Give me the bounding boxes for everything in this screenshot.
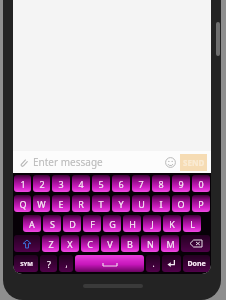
button[interactable]: I (152, 195, 170, 212)
staticText: J (151, 218, 154, 230)
button[interactable]: 2 (33, 175, 50, 192)
button[interactable]: 6 (112, 175, 130, 192)
staticText: O (177, 198, 185, 210)
button[interactable]: B (121, 235, 139, 252)
button[interactable]: 8 (152, 175, 170, 192)
button[interactable]: R (72, 195, 90, 212)
button[interactable]: N (141, 235, 159, 252)
staticText: K (169, 218, 175, 230)
staticText: U (138, 198, 145, 210)
button[interactable]: U (132, 195, 150, 212)
staticText: F (90, 218, 95, 230)
button[interactable]: F (83, 215, 101, 232)
staticText: 1 (20, 178, 26, 190)
staticText: M (166, 238, 175, 250)
staticText: SYM (20, 260, 33, 268)
staticText: 3 (58, 178, 64, 190)
button[interactable]: 3 (52, 175, 70, 192)
staticText: Q (19, 198, 27, 210)
staticText: 8 (158, 178, 164, 190)
staticText: R (78, 198, 84, 210)
button[interactable]: Done (183, 255, 210, 272)
staticText: X (67, 238, 73, 250)
staticText: G (109, 218, 116, 230)
staticText: L (190, 218, 195, 230)
staticText: H (129, 218, 136, 230)
button[interactable]: 7 (132, 175, 150, 192)
staticText: ? (47, 258, 51, 270)
staticText: P (198, 198, 204, 210)
button[interactable]: E (52, 195, 70, 212)
button[interactable]: C (81, 235, 99, 252)
button[interactable]: Power (216, 22, 220, 56)
button[interactable]: Enter (162, 255, 181, 272)
staticText: 2 (39, 178, 45, 190)
button[interactable]: Emoji (163, 155, 177, 169)
button[interactable]: . (146, 255, 160, 272)
staticText: D (69, 218, 76, 230)
button[interactable]: ? (40, 255, 57, 272)
button[interactable]: SYM (14, 255, 38, 272)
button[interactable]: Attach (17, 156, 30, 169)
staticText: 5 (98, 178, 104, 190)
button[interactable]: G (103, 215, 121, 232)
button[interactable]: X (61, 235, 79, 252)
button[interactable]: Z (42, 235, 59, 252)
staticText: 7 (138, 178, 144, 190)
staticText: 6 (118, 178, 124, 190)
button[interactable]: SEND (180, 154, 207, 171)
button[interactable]: A (23, 215, 41, 232)
button[interactable]: V (101, 235, 119, 252)
staticText: Z (48, 238, 54, 250)
staticText: S (50, 218, 55, 230)
staticText: 9 (178, 178, 184, 190)
button[interactable]: K (163, 215, 181, 232)
staticText: N (147, 238, 154, 250)
button[interactable]: W (33, 195, 50, 212)
staticText: SEND (183, 157, 205, 168)
button[interactable]: D (63, 215, 81, 232)
staticText: Enter message (33, 155, 103, 169)
button[interactable]: , (59, 255, 73, 272)
staticText: 4 (78, 178, 84, 190)
button[interactable]: Q (14, 195, 31, 212)
staticText: V (107, 238, 113, 250)
button[interactable]: H (123, 215, 141, 232)
staticText: A (29, 218, 35, 230)
button[interactable]: Shift (14, 235, 40, 252)
button[interactable]: Enter message (33, 155, 163, 169)
button[interactable]: T (92, 195, 110, 212)
button[interactable]: Backspace (181, 235, 210, 252)
button[interactable]: L (183, 215, 201, 232)
staticText: 0 (198, 178, 204, 190)
button[interactable]: P (192, 195, 210, 212)
staticText: Y (118, 198, 124, 210)
button[interactable]: J (143, 215, 161, 232)
staticText: Done (187, 259, 206, 269)
button[interactable]: 1 (14, 175, 31, 192)
button[interactable]: 4 (72, 175, 90, 192)
button[interactable]: O (172, 195, 190, 212)
button[interactable]: Space (75, 255, 144, 272)
staticText: W (37, 198, 46, 210)
staticText: T (98, 198, 104, 210)
button[interactable]: S (43, 215, 61, 232)
button[interactable]: 5 (92, 175, 110, 192)
button[interactable]: Y (112, 195, 130, 212)
staticText: B (127, 238, 133, 250)
button[interactable]: 0 (192, 175, 210, 192)
staticText: I (159, 198, 163, 210)
staticText: E (58, 198, 64, 210)
staticText: , (65, 258, 68, 269)
staticText: C (87, 238, 93, 250)
button[interactable]: 9 (172, 175, 190, 192)
button[interactable]: M (161, 235, 179, 252)
staticText: . (152, 258, 155, 269)
